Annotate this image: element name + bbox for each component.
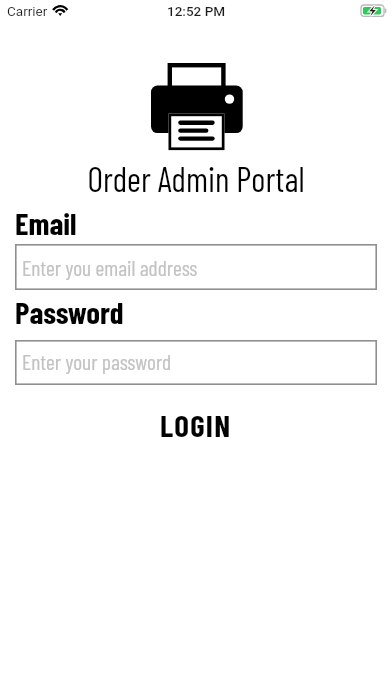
button[interactable]: Enter your password — [15, 340, 377, 385]
staticText: LOGIN — [160, 406, 232, 443]
other: Wi-Fi — [52, 3, 69, 17]
staticText: 12:52 PM — [167, 3, 226, 19]
other: Printer — [151, 63, 243, 151]
staticText: Carrier — [7, 3, 48, 19]
staticText: Enter you email address — [22, 254, 198, 280]
button[interactable]: Enter you email address — [15, 244, 377, 290]
staticText: Email — [15, 204, 77, 241]
button[interactable]: LOGIN — [0, 404, 392, 444]
staticText: Order Admin Portal — [0, 158, 392, 199]
other: Battery charging — [360, 4, 387, 18]
staticText: Enter your password — [22, 348, 172, 374]
staticText: Password — [15, 293, 124, 330]
